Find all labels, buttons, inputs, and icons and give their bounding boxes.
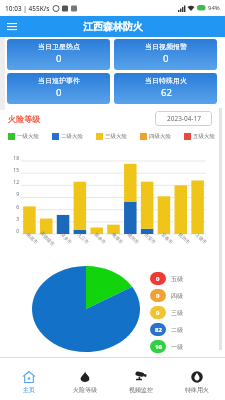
staticText: 0 — [156, 275, 160, 283]
staticText: 当日巡护事件 — [38, 76, 80, 85]
staticText: 南昌市 — [25, 232, 39, 246]
staticText: 82 — [155, 326, 162, 334]
button[interactable]: 视频监控 — [113, 358, 169, 400]
staticText: 2023-04-17 — [167, 114, 201, 123]
button[interactable] — [7, 23, 17, 30]
staticText: 18 — [5, 155, 19, 162]
staticText: 四级火险 — [149, 133, 171, 140]
button[interactable]: 主页 — [0, 358, 57, 400]
staticText: 四级 — [171, 292, 183, 300]
staticText: 三级火险 — [105, 133, 127, 140]
staticText: 0 — [163, 52, 169, 65]
staticText: 一级 — [171, 343, 183, 351]
button[interactable]: 当日特殊用火 — [114, 73, 217, 104]
staticText: 抚州市 — [177, 232, 191, 246]
staticText: 火险等级 — [73, 386, 97, 394]
button[interactable]: 当日巡护事件 — [7, 73, 110, 104]
staticText: 16 — [155, 343, 162, 351]
staticText: 萍乡市 — [59, 232, 73, 246]
staticText: 二级 — [171, 326, 183, 334]
staticText: 0 — [56, 86, 62, 99]
staticText: 二级火险 — [61, 133, 83, 140]
staticText: 10:03 | 455K/s — [5, 4, 50, 13]
staticText: 0 — [5, 228, 19, 235]
staticText: 吉安市 — [143, 232, 157, 246]
staticText: 当日卫星热点 — [38, 42, 80, 51]
staticText: 62 — [161, 86, 172, 99]
staticText: 江西森林防火 — [83, 20, 143, 33]
button[interactable]: 当日视频报警 — [114, 39, 217, 70]
staticText: 视频监控 — [129, 386, 153, 394]
staticText: 当日特殊用火 — [145, 76, 187, 85]
staticText: 9 — [5, 191, 19, 198]
staticText: 特殊用火 — [185, 386, 209, 394]
staticText: 当日视频报警 — [145, 42, 187, 51]
staticText: 12 — [5, 179, 19, 186]
staticText: 新余市 — [93, 232, 107, 246]
staticText: 94% — [208, 4, 220, 12]
staticText: 鹰潭市 — [110, 232, 124, 246]
staticText: 0 — [56, 52, 62, 65]
staticText: 景德镇市 — [38, 230, 55, 247]
staticText: 0 — [156, 292, 160, 300]
staticText: 0 — [156, 309, 160, 317]
button[interactable]: 火险等级 — [57, 358, 113, 400]
staticText: 一级火险 — [17, 133, 39, 140]
button[interactable]: 当日卫星热点 — [7, 39, 110, 70]
button[interactable]: 2023-04-17 — [155, 111, 212, 126]
staticText: 上饶市 — [194, 232, 208, 246]
button[interactable]: 特殊用火 — [169, 358, 225, 400]
staticText: 15 — [5, 167, 19, 174]
staticText: 主页 — [23, 386, 35, 394]
staticText: 九江市 — [76, 232, 90, 246]
staticText: 五级 — [171, 275, 183, 283]
staticText: 赣州市 — [126, 232, 140, 246]
staticText: 火险等级 — [8, 114, 40, 124]
staticText: 五级火险 — [193, 133, 215, 140]
staticText: 6 — [5, 204, 19, 211]
staticText: 3 — [5, 216, 19, 223]
staticText: 三级 — [171, 309, 183, 317]
staticText: 宜春市 — [160, 232, 174, 246]
